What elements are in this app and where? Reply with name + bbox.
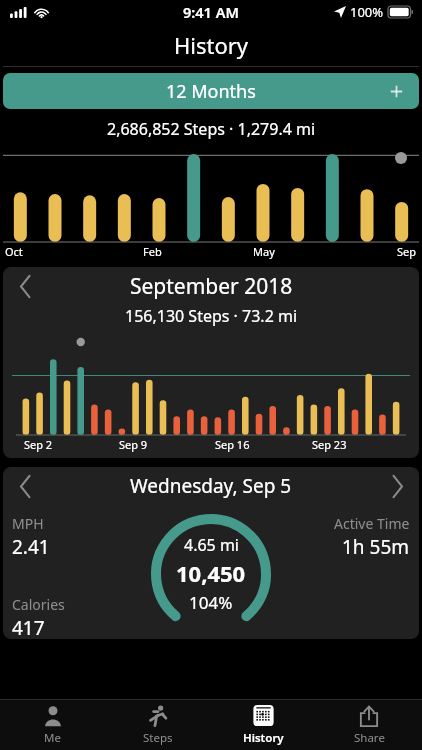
staticText: 156,130 Steps · 73.2 mi bbox=[125, 305, 298, 327]
staticText: 12 Months bbox=[166, 79, 256, 104]
staticText: 10,450 bbox=[176, 558, 246, 588]
staticText: Oct bbox=[5, 244, 23, 259]
staticText: Sep 9 bbox=[119, 437, 148, 452]
staticText: Calories bbox=[12, 595, 65, 614]
button[interactable]: Steps bbox=[105, 700, 210, 750]
staticText: Share bbox=[354, 730, 385, 746]
button[interactable]: Previous day bbox=[9, 470, 41, 502]
staticText: Sep 16 bbox=[215, 437, 250, 452]
button[interactable]: Next day bbox=[381, 470, 413, 502]
button[interactable]: Me bbox=[0, 700, 105, 750]
staticText: History bbox=[243, 730, 284, 746]
staticText: Me bbox=[44, 730, 61, 746]
staticText: Sep 23 bbox=[312, 437, 347, 452]
staticText: September 2018 bbox=[130, 272, 293, 301]
staticText: Feb bbox=[143, 244, 162, 259]
staticText: History bbox=[174, 30, 249, 60]
staticText: 100% bbox=[350, 3, 384, 21]
staticText: 104% bbox=[189, 591, 233, 614]
staticText: Sep bbox=[397, 244, 417, 259]
button[interactable]: Add bbox=[386, 81, 406, 101]
button[interactable]: Share bbox=[316, 700, 422, 750]
staticText: Wednesday, Sep 5 bbox=[130, 473, 292, 499]
button[interactable]: 12 Months bbox=[3, 73, 419, 109]
staticText: 9:41 AM bbox=[183, 2, 239, 22]
staticText: Sep 2 bbox=[24, 437, 53, 452]
button[interactable]: Previous month bbox=[9, 270, 41, 302]
staticText: MPH bbox=[12, 514, 44, 533]
staticText: 2.41 bbox=[12, 534, 50, 560]
staticText: Active Time bbox=[334, 514, 410, 533]
staticText: 417 bbox=[12, 615, 45, 639]
staticText: May bbox=[253, 244, 275, 259]
staticText: 1h 55m bbox=[342, 534, 410, 560]
staticText: 4.65 mi bbox=[184, 534, 239, 556]
staticText: Steps bbox=[143, 730, 173, 746]
button[interactable]: History bbox=[210, 700, 316, 750]
staticText: 2,686,852 Steps · 1,279.4 mi bbox=[107, 118, 316, 140]
